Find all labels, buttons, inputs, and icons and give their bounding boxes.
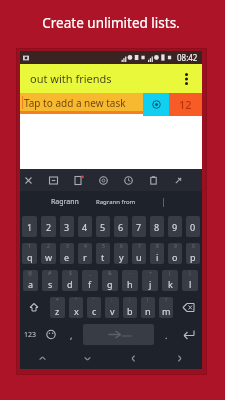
button[interactable]: Ragrann [49, 195, 81, 209]
button[interactable]: ' [87, 297, 101, 318]
button[interactable]: ? [159, 297, 173, 318]
button[interactable]: 3 [60, 243, 74, 264]
button[interactable]: 2 [41, 216, 56, 237]
button[interactable]: 0 [186, 243, 200, 264]
staticText: q [27, 251, 33, 263]
button[interactable]: * [50, 297, 65, 318]
button[interactable]: 5 [96, 243, 110, 264]
staticText: _ [89, 270, 92, 277]
button[interactable]: Close [21, 169, 36, 191]
button[interactable]: 8 [150, 216, 164, 237]
button[interactable]: 6 [114, 243, 128, 264]
staticText: 5 [100, 221, 106, 233]
button[interactable]: 2 [41, 243, 56, 264]
button[interactable]: 7 [132, 216, 146, 237]
staticText: o [172, 251, 178, 263]
staticText: j [149, 278, 152, 290]
button[interactable]: 8 [150, 243, 164, 264]
button[interactable]: - [122, 270, 138, 291]
button[interactable]: Shift [22, 297, 46, 318]
button[interactable]: _ [82, 270, 98, 291]
staticText: @ [28, 270, 33, 277]
staticText: 6 [120, 243, 123, 250]
button[interactable]: 4 [78, 216, 92, 237]
staticText: 2 [47, 243, 50, 250]
button[interactable]: Keyboard [46, 169, 61, 191]
staticText: r [83, 251, 87, 263]
button[interactable]: 4 [78, 243, 92, 264]
button[interactable]: 0 [186, 216, 200, 237]
staticText: ? [165, 297, 168, 304]
button[interactable]: Ragrann from [94, 196, 138, 208]
button[interactable]: Pin [171, 169, 186, 191]
button[interactable]: ( [162, 270, 178, 291]
button[interactable]: 1 [22, 216, 37, 237]
staticText: z [55, 305, 60, 317]
button[interactable]: & [102, 270, 118, 291]
button[interactable]: " [69, 297, 83, 318]
button[interactable]: Emoji [121, 169, 136, 191]
button[interactable]: More options [174, 67, 198, 91]
button[interactable]: Left [110, 348, 156, 369]
staticText: m [162, 305, 171, 317]
staticText: i [156, 251, 159, 263]
staticText: ; [129, 297, 131, 304]
button[interactable]: , [63, 324, 79, 345]
staticText: k [168, 278, 173, 290]
button[interactable]: : [105, 297, 119, 318]
button[interactable]: 12 [169, 93, 202, 116]
staticText: * [56, 297, 59, 304]
button[interactable]: 3 [60, 216, 74, 237]
button[interactable]: Down [65, 348, 110, 369]
button[interactable]: Emoji [43, 324, 59, 345]
staticText: s [48, 278, 53, 290]
staticText: y [119, 251, 124, 263]
staticText: ) [189, 270, 191, 277]
button[interactable] [20, 93, 202, 111]
staticText: Ragrann [51, 197, 79, 207]
staticText: " [75, 297, 78, 304]
staticText: 3 [64, 221, 70, 233]
staticText: 4 [82, 221, 88, 233]
button[interactable]: 7 [132, 243, 146, 264]
button[interactable]: Voice input [143, 93, 169, 116]
staticText: x [74, 305, 79, 317]
button[interactable]: Up [20, 348, 65, 369]
button[interactable]: ) [182, 270, 198, 291]
staticText: Create unlimited lists. [42, 14, 180, 32]
staticText: g [107, 278, 113, 290]
button[interactable]: 6 [114, 216, 128, 237]
staticText: w [45, 251, 53, 263]
button[interactable]: $ [62, 270, 78, 291]
staticText: & [108, 270, 112, 277]
staticText: Tap to add a new task [24, 96, 126, 110]
staticText: out with friends [30, 71, 112, 86]
button[interactable]: Clipboard [71, 169, 86, 191]
button[interactable]: + [142, 270, 158, 291]
button[interactable]: 9 [168, 216, 182, 237]
button[interactable]: Notes [146, 169, 161, 191]
button[interactable]: Backspace [177, 297, 200, 318]
staticText: n [145, 305, 151, 317]
staticText: c [92, 305, 97, 317]
button[interactable]: Right [156, 348, 202, 369]
button[interactable]: Enter [178, 324, 200, 345]
staticText: - [129, 270, 131, 277]
button[interactable]: 9 [168, 243, 182, 264]
button[interactable]: @ [23, 270, 38, 291]
staticText: 1 [28, 243, 31, 250]
staticText: u [136, 251, 142, 263]
button[interactable]: 5 [96, 216, 110, 237]
staticText: 1 [27, 221, 33, 233]
button[interactable]: Space [83, 324, 154, 345]
button[interactable]: ! [141, 297, 155, 318]
staticText: ! [147, 297, 149, 304]
button[interactable]: Settings [96, 169, 111, 191]
staticText: p [190, 251, 196, 263]
button[interactable]: # [42, 270, 58, 291]
staticText: 9 [174, 243, 177, 250]
button[interactable]: . [158, 324, 174, 345]
button[interactable]: ; [123, 297, 137, 318]
button[interactable]: 1 [22, 243, 37, 264]
button[interactable]: 123 [22, 324, 39, 345]
